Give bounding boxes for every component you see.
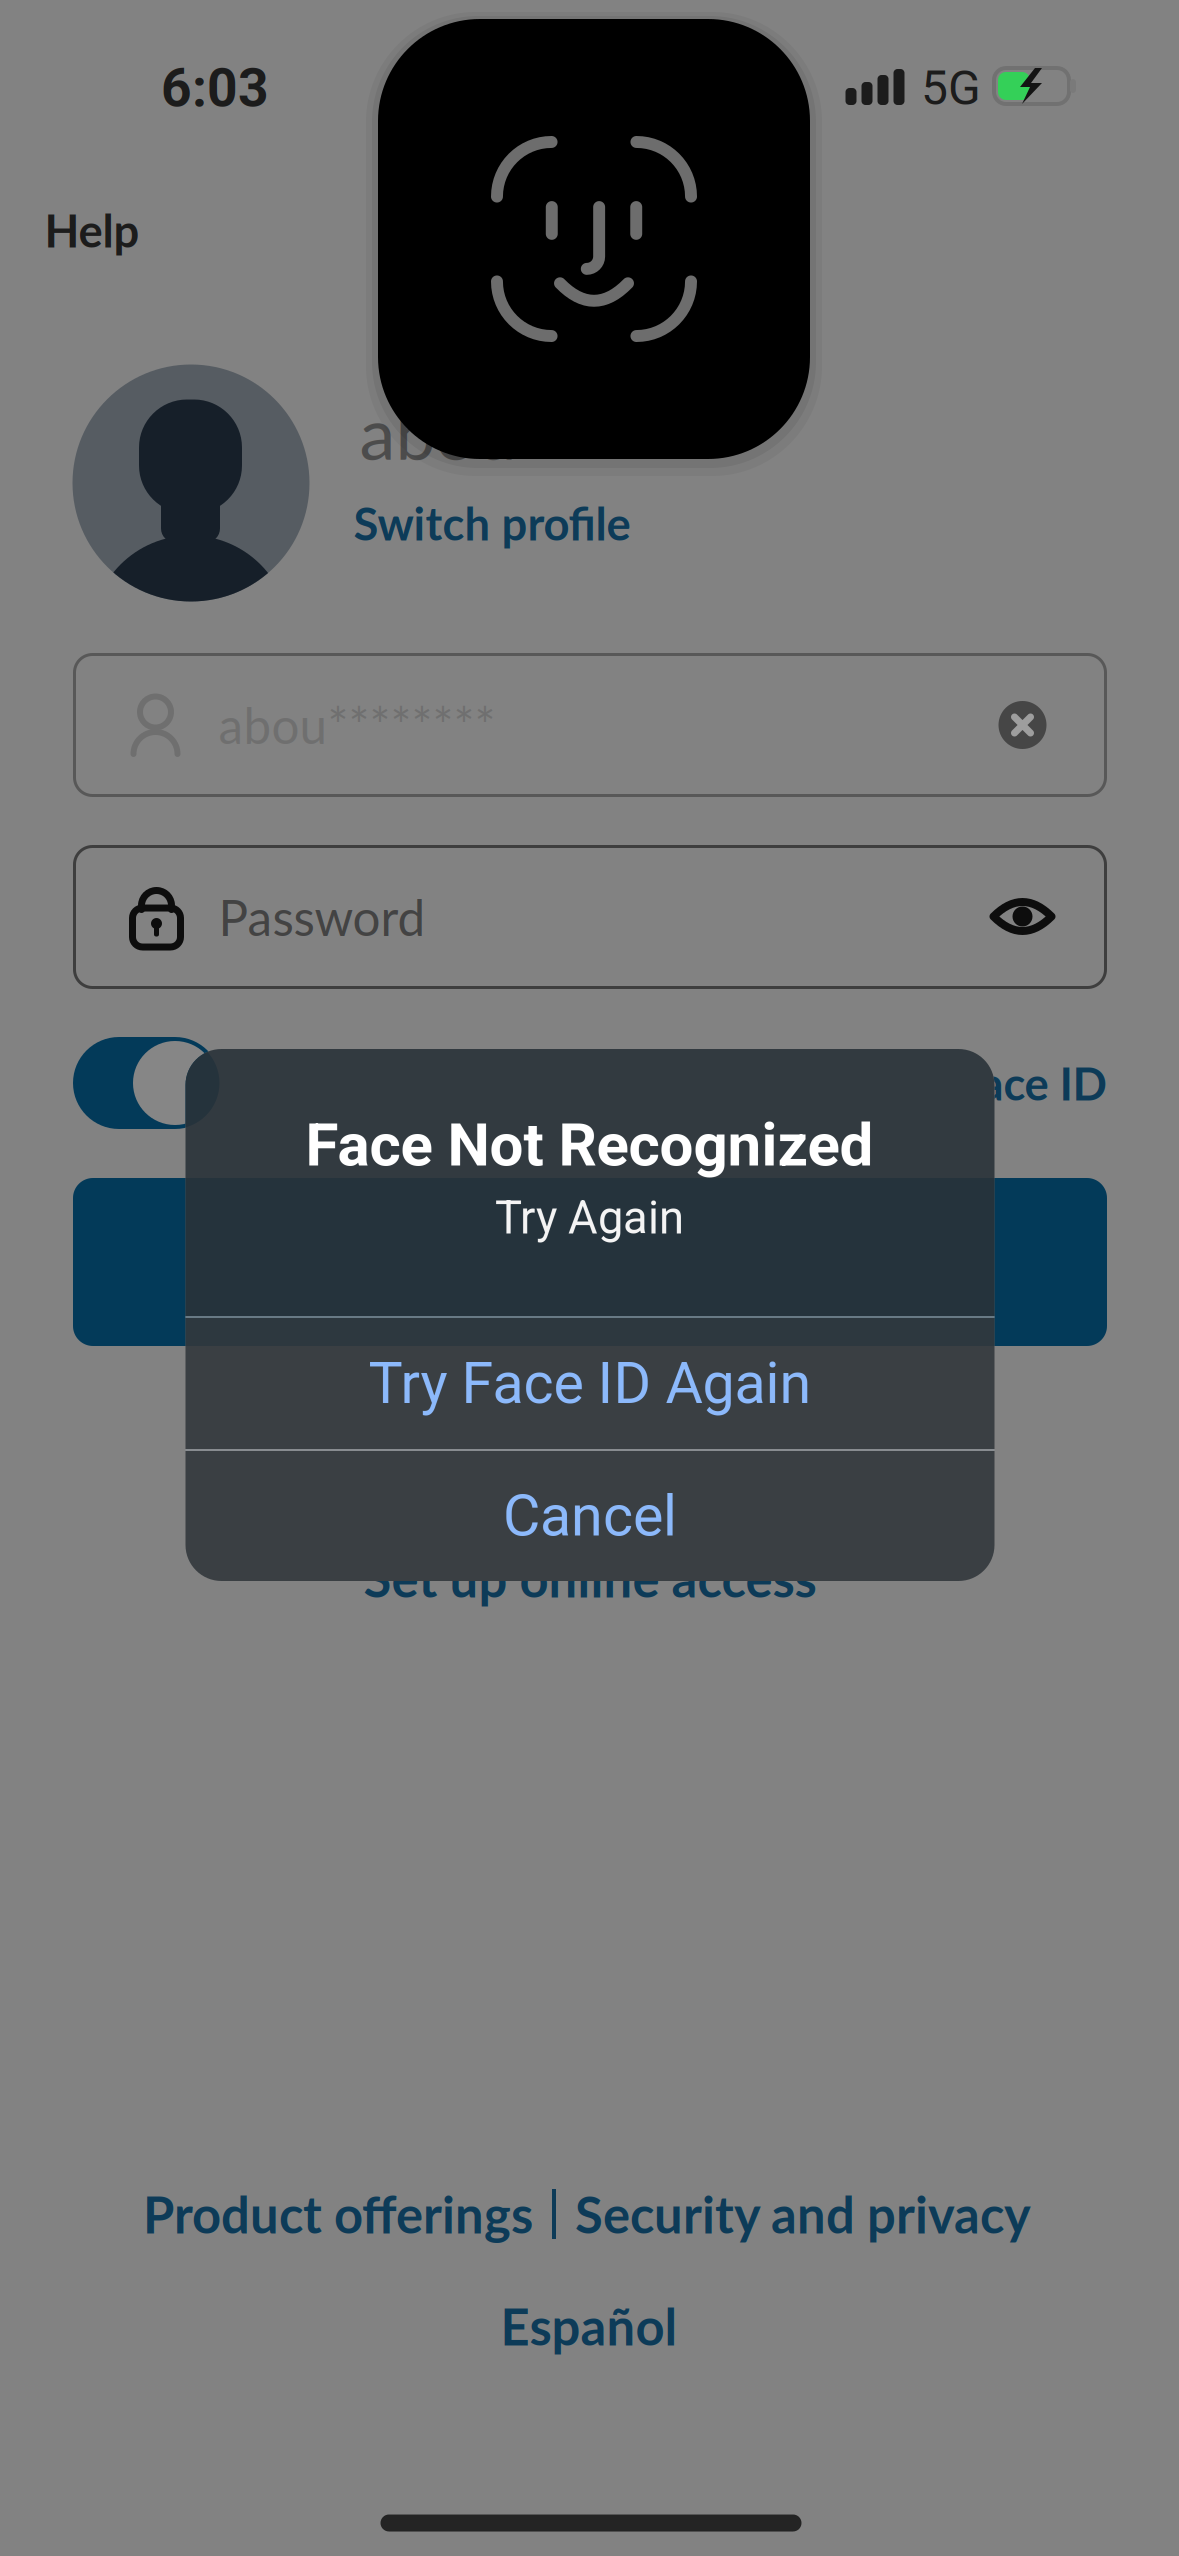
staticText: 6:03	[161, 57, 269, 119]
staticText: Password	[218, 887, 425, 947]
button[interactable]: Log on	[73, 1178, 1107, 1346]
staticText: Cancel	[503, 1482, 677, 1550]
button[interactable]: Security and privacy	[575, 2174, 1031, 2254]
staticText: Face Not Recognized	[305, 1110, 873, 1180]
staticText: Product offerings	[143, 2184, 533, 2244]
staticText: Save username & Face ID	[599, 1056, 1106, 1110]
button[interactable]: Switch profile	[353, 484, 630, 562]
staticText: 5G	[921, 60, 981, 116]
staticText: abou	[359, 389, 516, 475]
button[interactable]: Cancel	[185, 1451, 994, 1581]
staticText: Log on	[514, 1232, 665, 1292]
staticText: Security and privacy	[575, 2184, 1031, 2244]
staticText: Switch profile	[353, 496, 630, 550]
button[interactable]: Help	[22, 187, 161, 273]
staticText: Español	[500, 2296, 677, 2356]
staticText: Try Face ID Again	[368, 1350, 811, 1417]
staticText: abou********	[218, 695, 495, 755]
button[interactable]: Try Face ID Again	[185, 1318, 994, 1449]
button[interactable]: Save username and Face ID	[73, 1037, 221, 1129]
staticText: Set up online access	[363, 1548, 816, 1608]
button[interactable]: Español	[500, 2282, 677, 2370]
button[interactable]: Product offerings	[143, 2174, 533, 2254]
staticText: Help	[44, 203, 139, 257]
button[interactable]: Set up online access	[363, 1532, 816, 1624]
staticText: Try Again	[495, 1191, 684, 1244]
